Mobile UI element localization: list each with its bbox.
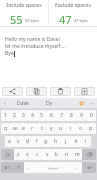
staticText: m — [75, 151, 80, 158]
staticText: 7 — [60, 112, 63, 119]
button[interactable]: r — [28, 123, 37, 134]
button[interactable]: 3 — [19, 110, 28, 121]
staticText: !#1 — [4, 165, 10, 170]
staticText: Dy — [46, 100, 53, 107]
button[interactable]: Copy — [26, 87, 47, 96]
button[interactable]: g — [41, 136, 51, 147]
button[interactable]: w — [10, 123, 19, 134]
staticText: 47 byte — [74, 18, 88, 23]
staticText: n — [65, 151, 69, 158]
button[interactable]: z — [14, 149, 23, 160]
button[interactable]: o — [76, 123, 86, 134]
staticText: k — [75, 138, 78, 145]
button[interactable]: h — [51, 136, 61, 147]
button[interactable]: 6 — [46, 110, 56, 121]
staticText: l — [85, 138, 87, 145]
button[interactable]: Symbols — [1, 162, 13, 173]
button[interactable]: t — [37, 123, 46, 134]
button[interactable]: i — [66, 123, 76, 134]
staticText: o — [79, 125, 83, 132]
staticText: 6 — [50, 112, 53, 119]
staticText: h — [54, 138, 58, 145]
button[interactable]: Share — [2, 87, 23, 96]
button[interactable]: Delete — [50, 87, 71, 96]
button[interactable]: 2 — [10, 110, 19, 121]
staticText: 55 byte — [25, 18, 39, 23]
staticText: 0 — [90, 112, 93, 119]
staticText: d — [26, 138, 30, 145]
staticText: 1 — [4, 112, 7, 119]
staticText: e — [22, 125, 25, 132]
staticText: z — [17, 151, 20, 158]
button[interactable]: 8 — [66, 110, 76, 121]
button[interactable]: d — [23, 136, 32, 147]
button[interactable]: Settings — [75, 98, 87, 108]
staticText: j — [65, 138, 67, 145]
staticText: , — [28, 164, 30, 171]
staticText: Include spaces — [6, 2, 42, 9]
button[interactable]: s — [14, 136, 23, 147]
button[interactable]: 9 — [76, 110, 86, 121]
button[interactable]: b — [52, 149, 62, 160]
staticText: 55 — [10, 12, 23, 24]
button[interactable]: v — [42, 149, 52, 160]
button[interactable]: Voice input — [13, 162, 24, 173]
button[interactable]: n — [62, 149, 72, 160]
staticText: v — [46, 151, 49, 158]
button[interactable]: Backspace — [82, 149, 96, 160]
button[interactable]: Add — [74, 87, 95, 96]
button[interactable]: m — [72, 149, 82, 160]
button[interactable]: , — [24, 162, 34, 173]
staticText: w — [13, 125, 17, 132]
button[interactable]: f — [32, 136, 41, 147]
staticText: q — [4, 125, 8, 132]
staticText: f — [36, 138, 38, 145]
button[interactable]: . — [72, 162, 82, 173]
staticText: let me introduce myself.... — [5, 43, 66, 50]
button[interactable]: Dave — [9, 98, 37, 108]
button[interactable]: q — [1, 123, 10, 134]
button[interactable]: c — [32, 149, 42, 160]
staticText: 8 — [70, 112, 73, 119]
staticText: u — [59, 125, 63, 132]
button[interactable]: Shift — [1, 149, 14, 160]
button[interactable]: 5 — [37, 110, 46, 121]
button[interactable]: 7 — [56, 110, 66, 121]
button[interactable]: j — [61, 136, 71, 147]
button[interactable]: x — [23, 149, 32, 160]
button[interactable]: y — [46, 123, 56, 134]
staticText: a — [8, 138, 11, 145]
staticText: 5 — [40, 112, 43, 119]
button[interactable]: Dy — [37, 98, 61, 108]
button[interactable]: 0 — [86, 110, 96, 121]
staticText: Bye — [5, 50, 14, 57]
staticText: r — [31, 125, 34, 132]
button[interactable]: Previous suggestions — [0, 98, 9, 108]
button[interactable]: p — [86, 123, 96, 134]
staticText: b — [55, 151, 59, 158]
button[interactable]: Enter — [82, 162, 96, 173]
button[interactable]: Hello my name is Dave! — [0, 27, 97, 85]
staticText: c — [36, 151, 39, 158]
button[interactable]: 1 — [1, 110, 10, 121]
staticText: ⋯ — [90, 100, 95, 106]
button[interactable]: Space — [34, 162, 72, 173]
staticText: x — [26, 151, 29, 158]
button[interactable]: a — [5, 136, 14, 147]
button[interactable]: k — [71, 136, 81, 147]
staticText: Hello my name is Dave! — [5, 36, 60, 43]
button[interactable]: l — [81, 136, 91, 147]
staticText: 47 — [59, 12, 72, 24]
staticText: . — [76, 164, 78, 171]
staticText: p — [89, 125, 93, 132]
staticText: 2 — [13, 112, 16, 119]
staticText: ‹ — [4, 99, 6, 107]
staticText: 9 — [80, 112, 83, 119]
button[interactable]: Exclude spaces — [49, 0, 97, 26]
button[interactable]: e — [19, 123, 28, 134]
button[interactable]: Include spaces — [0, 0, 48, 26]
button[interactable]: More options — [87, 98, 97, 108]
button[interactable]: u — [56, 123, 66, 134]
staticText: g — [44, 138, 48, 145]
button[interactable]: 4 — [28, 110, 37, 121]
